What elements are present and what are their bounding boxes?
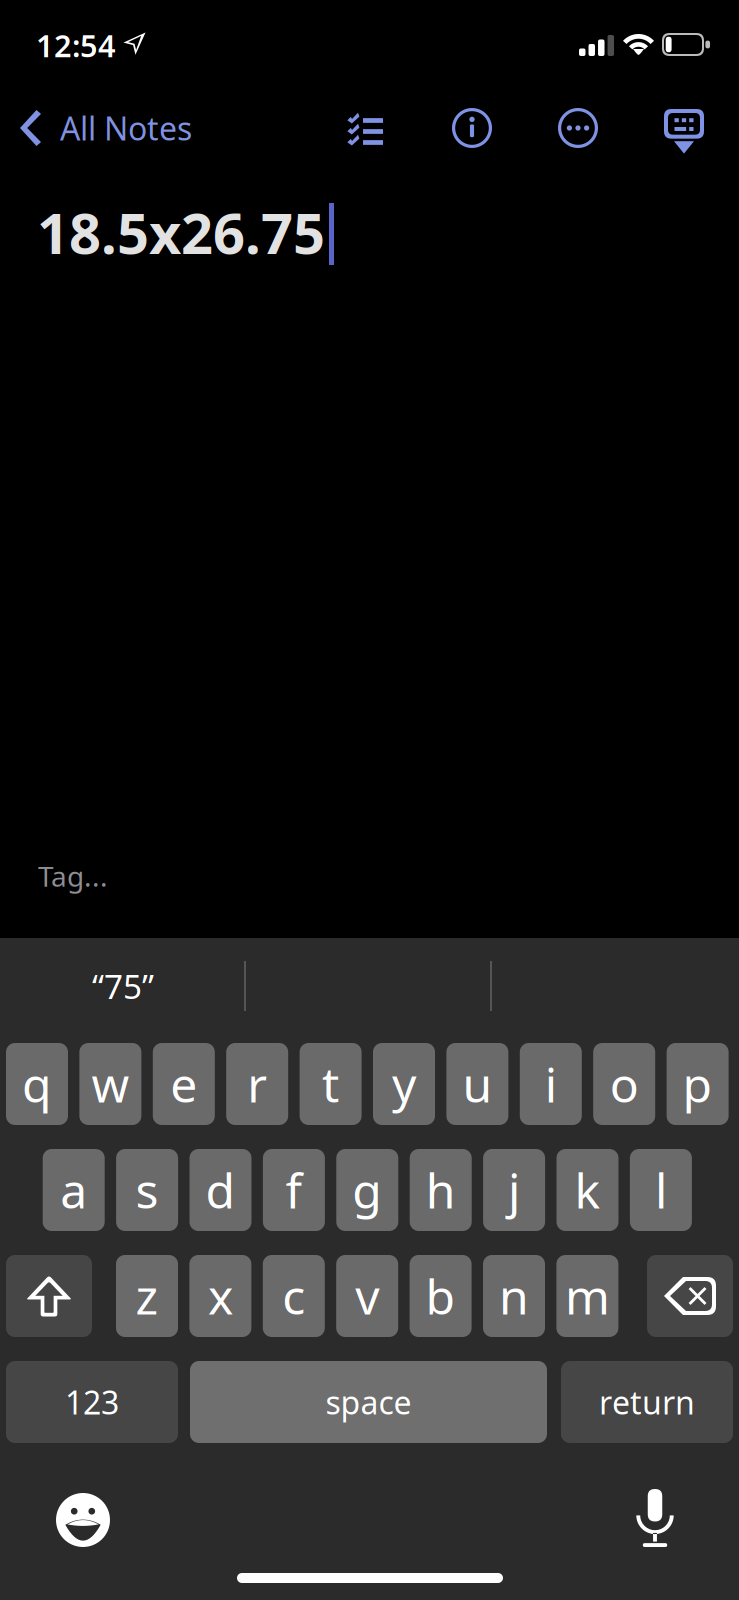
staticText: i bbox=[545, 1052, 557, 1116]
staticText: d bbox=[205, 1158, 235, 1222]
staticText: f bbox=[285, 1158, 302, 1222]
button[interactable]: u bbox=[446, 1043, 508, 1125]
staticText: n bbox=[499, 1264, 529, 1328]
button[interactable]: w bbox=[79, 1043, 141, 1125]
staticText: j bbox=[508, 1158, 520, 1222]
staticText: 12:54 bbox=[36, 25, 116, 66]
button[interactable]: p bbox=[667, 1043, 729, 1125]
staticText: w bbox=[91, 1052, 129, 1116]
staticText: r bbox=[247, 1052, 267, 1116]
button[interactable]: c bbox=[263, 1255, 325, 1337]
button[interactable]: l bbox=[630, 1149, 692, 1231]
button[interactable]: d bbox=[189, 1149, 251, 1231]
button[interactable]: x bbox=[189, 1255, 251, 1337]
button[interactable]: q bbox=[6, 1043, 68, 1125]
button[interactable]: Dictation bbox=[613, 1476, 697, 1560]
button[interactable]: v bbox=[336, 1255, 398, 1337]
staticText: g bbox=[352, 1158, 382, 1222]
staticText: t bbox=[322, 1052, 339, 1116]
staticText: 123 bbox=[65, 1381, 119, 1423]
staticText: y bbox=[392, 1052, 416, 1116]
button[interactable]: Tag... bbox=[0, 853, 146, 899]
staticText: v bbox=[355, 1264, 379, 1328]
staticText: o bbox=[610, 1052, 639, 1116]
staticText: All Notes bbox=[60, 107, 192, 149]
button[interactable]: More bbox=[539, 93, 617, 163]
button[interactable]: Delete bbox=[647, 1255, 733, 1337]
staticText: x bbox=[208, 1264, 233, 1328]
button[interactable]: o bbox=[593, 1043, 655, 1125]
button[interactable]: k bbox=[556, 1149, 618, 1231]
button[interactable]: Hide Keyboard bbox=[646, 99, 722, 165]
staticText: q bbox=[22, 1052, 52, 1116]
button[interactable]: t bbox=[300, 1043, 362, 1125]
staticText: 18.5x26.75 bbox=[37, 195, 325, 269]
staticText: p bbox=[683, 1052, 713, 1116]
button[interactable]: a bbox=[43, 1149, 105, 1231]
staticText: l bbox=[655, 1158, 667, 1222]
button[interactable]: z bbox=[116, 1255, 178, 1337]
button[interactable]: 123 bbox=[6, 1361, 178, 1443]
button[interactable]: f bbox=[263, 1149, 325, 1231]
staticText: h bbox=[426, 1158, 456, 1222]
button[interactable]: g bbox=[336, 1149, 398, 1231]
button[interactable]: y bbox=[373, 1043, 435, 1125]
button[interactable]: m bbox=[556, 1255, 618, 1337]
button[interactable]: Shift bbox=[6, 1255, 92, 1337]
staticText: u bbox=[462, 1052, 492, 1116]
staticText: “75” bbox=[92, 964, 154, 1008]
button[interactable]: n bbox=[483, 1255, 545, 1337]
button[interactable]: r bbox=[226, 1043, 288, 1125]
button[interactable]: j bbox=[483, 1149, 545, 1231]
staticText: e bbox=[170, 1052, 197, 1116]
staticText: z bbox=[135, 1264, 158, 1328]
button[interactable]: Checklist bbox=[327, 97, 403, 166]
button[interactable]: Note Info bbox=[433, 93, 511, 163]
button[interactable]: space bbox=[190, 1361, 547, 1443]
staticText: a bbox=[60, 1158, 87, 1222]
button[interactable]: “75” bbox=[11, 954, 235, 1018]
staticText: s bbox=[136, 1158, 159, 1222]
staticText: m bbox=[565, 1264, 610, 1328]
button[interactable]: h bbox=[410, 1149, 472, 1231]
button[interactable]: e bbox=[153, 1043, 215, 1125]
staticText: space bbox=[325, 1381, 411, 1423]
button[interactable]: b bbox=[410, 1255, 472, 1337]
staticText: k bbox=[574, 1158, 600, 1222]
staticText: return bbox=[599, 1381, 695, 1423]
button[interactable]: All Notes bbox=[0, 92, 210, 164]
button[interactable]: return bbox=[561, 1361, 733, 1443]
staticText: b bbox=[426, 1264, 456, 1328]
button[interactable]: Emoji bbox=[41, 1478, 125, 1562]
staticText: Tag... bbox=[38, 857, 108, 895]
button[interactable]: i bbox=[520, 1043, 582, 1125]
button[interactable]: s bbox=[116, 1149, 178, 1231]
staticText: c bbox=[282, 1264, 305, 1328]
